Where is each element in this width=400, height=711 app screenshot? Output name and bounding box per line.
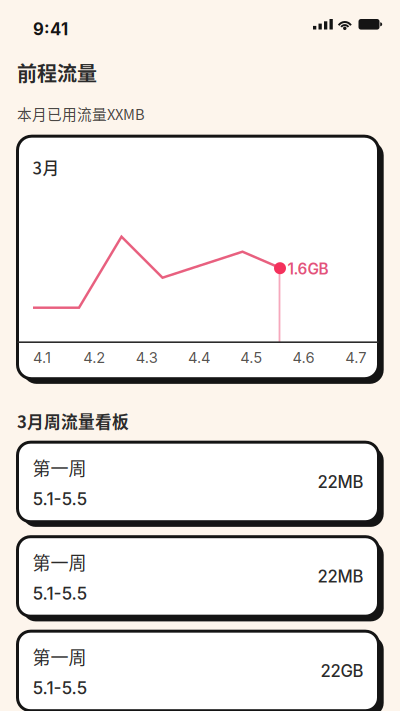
staticText: 22MB xyxy=(317,566,363,587)
button[interactable]: 第一周 xyxy=(17,442,383,526)
staticText: 5.1-5.5 xyxy=(32,677,87,698)
staticText: 本月已用流量XXMB xyxy=(17,103,145,124)
staticText: 22GB xyxy=(320,661,363,681)
staticText: 4.4 xyxy=(188,349,210,366)
staticText: 5.1-5.5 xyxy=(32,488,87,509)
staticText: 3月 xyxy=(32,155,59,179)
button[interactable]: 第一周 xyxy=(17,631,383,711)
staticText: 4.3 xyxy=(136,349,158,366)
staticText: 5.1-5.5 xyxy=(32,583,87,604)
staticText: 第一周 xyxy=(32,454,86,480)
staticText: 4.1 xyxy=(33,349,51,366)
staticText: 第一周 xyxy=(32,643,86,669)
staticText: 4.7 xyxy=(345,349,366,366)
staticText: 前程流量 xyxy=(17,58,97,87)
staticText: 3月周流量看板 xyxy=(17,409,129,433)
button[interactable]: 第一周 xyxy=(17,537,383,621)
staticText: 22MB xyxy=(317,472,363,492)
staticText: 第一周 xyxy=(32,549,86,575)
staticText: 9:41 xyxy=(33,19,68,39)
staticText: 4.5 xyxy=(240,349,262,366)
staticText: 1.6GB xyxy=(287,260,328,278)
staticText: 4.6 xyxy=(292,349,314,366)
staticText: 4.2 xyxy=(83,349,105,366)
